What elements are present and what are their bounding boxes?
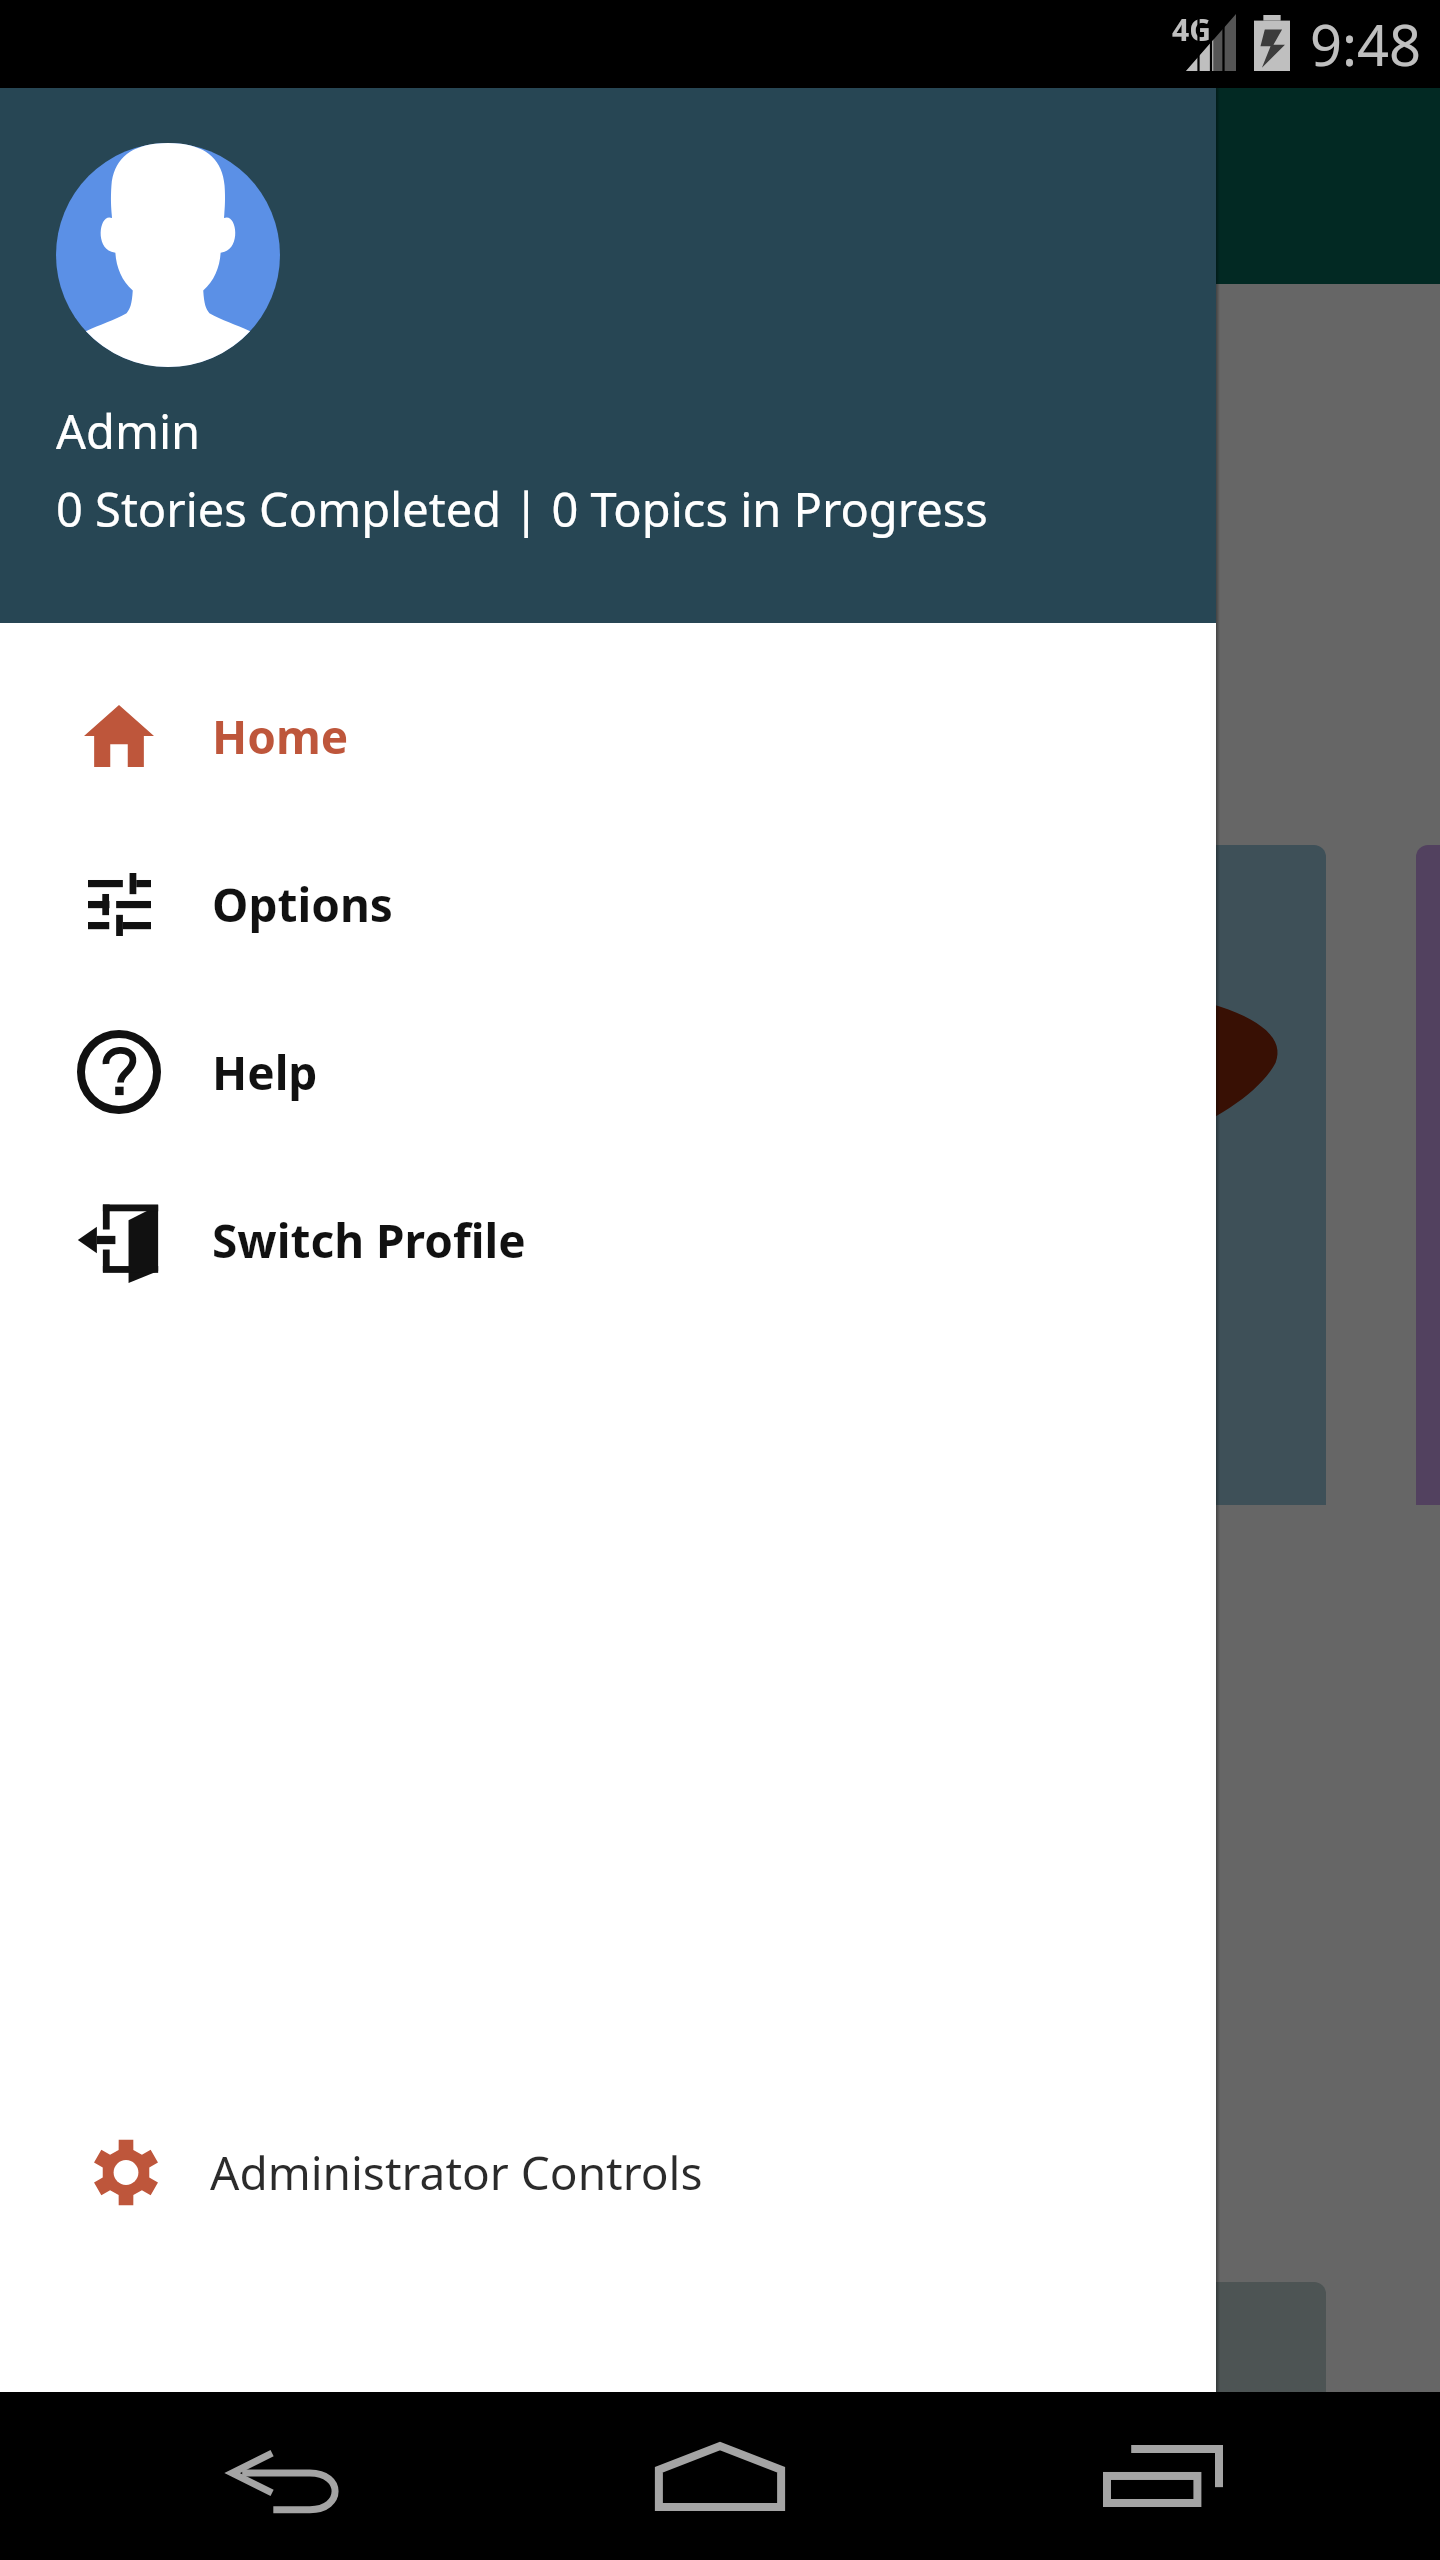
button[interactable]: Close navigation drawer: [0, 88, 1440, 2392]
button[interactable]: Home: [0, 652, 1216, 820]
staticText: Help: [212, 1041, 318, 1104]
button[interactable]: Options: [0, 820, 1216, 988]
staticText: 0 Stories Completed | 0 Topics in Progre…: [56, 477, 988, 541]
button[interactable]: Recents: [1068, 2416, 1258, 2536]
button[interactable]: Switch Profile: [0, 1156, 1216, 1324]
staticText: Admin: [56, 399, 201, 463]
staticText: 4G: [1172, 9, 1211, 50]
staticText: Administrator Controls: [210, 2141, 703, 2204]
staticText: Home: [212, 705, 349, 768]
button[interactable]: Home: [625, 2416, 815, 2536]
staticText: Options: [212, 873, 393, 936]
staticText: 9:48: [1310, 6, 1422, 82]
staticText: Switch Profile: [212, 1209, 526, 1272]
button[interactable]: Administrator Controls: [0, 2088, 1216, 2256]
button[interactable]: Help: [0, 988, 1216, 1156]
button[interactable]: Back: [196, 2423, 386, 2543]
